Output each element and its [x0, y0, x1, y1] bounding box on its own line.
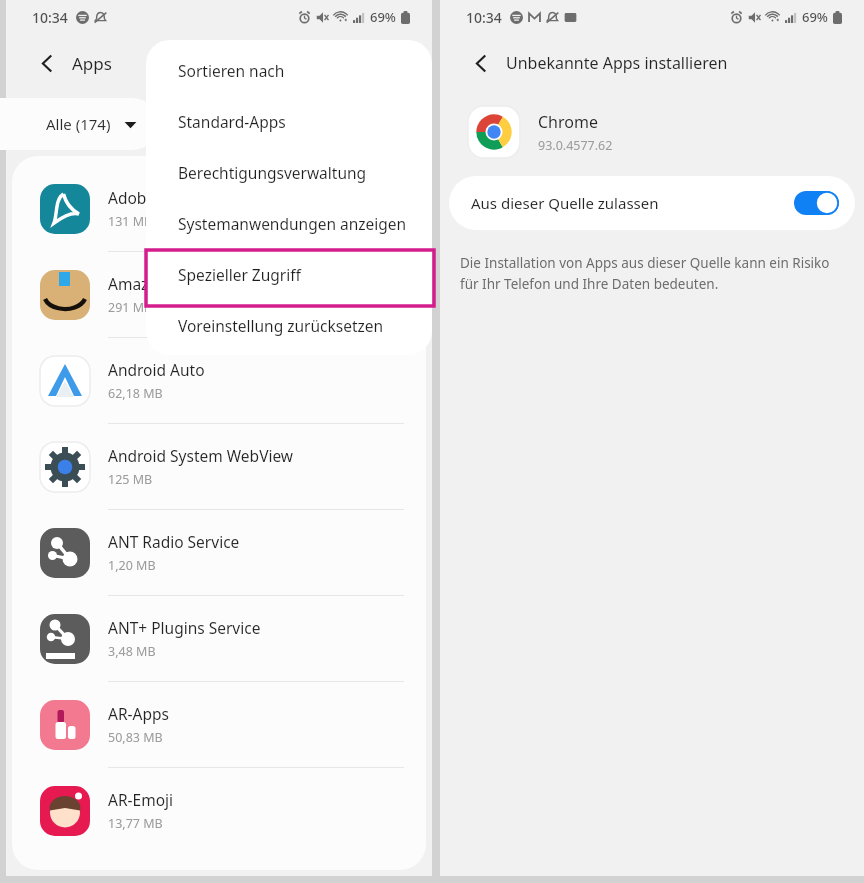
staticText: 291 MB — [108, 299, 153, 316]
button[interactable]: Spezieller Zugriff — [146, 249, 432, 300]
staticText: Android Auto — [108, 359, 205, 380]
staticText: 62,18 MB — [108, 385, 163, 402]
button[interactable]: Android System WebView — [12, 424, 426, 509]
staticText: Android System WebView — [108, 445, 294, 466]
staticText: 69% — [370, 8, 396, 26]
button[interactable]: Berechtigungsverwaltung — [146, 147, 432, 198]
staticText: Alle (174) — [46, 114, 111, 134]
staticText: Amazon Shopping — [108, 273, 242, 294]
staticText: 131 MB — [108, 213, 153, 230]
button[interactable]: Aus dieser Quelle zulassen — [449, 176, 855, 230]
button[interactable]: Systemanwendungen anzeigen — [146, 198, 432, 249]
button[interactable]: AR-Apps — [12, 682, 426, 767]
staticText: Aus dieser Quelle zulassen — [471, 193, 659, 213]
staticText: 10:34 — [32, 8, 68, 27]
other: Aus dieser Quelle zulassen — [794, 191, 839, 215]
button[interactable]: AR-Emoji — [12, 768, 426, 853]
staticText: Unbekannte Apps installieren — [506, 52, 728, 74]
staticText: Spezieller Zugriff — [178, 264, 301, 285]
button[interactable]: Back — [462, 44, 500, 82]
staticText: Adobe Acrobat — [108, 187, 216, 208]
staticText: 10:34 — [466, 8, 502, 27]
staticText: 13,77 MB — [108, 815, 163, 832]
staticText: AR-Apps — [108, 703, 169, 724]
staticText: Die Installation von Apps aus dieser Que… — [460, 254, 834, 293]
button[interactable]: Adobe Acrobat — [12, 166, 426, 251]
button[interactable]: ANT Radio Service — [12, 510, 426, 595]
button[interactable]: Standard-Apps — [146, 96, 432, 147]
staticText: Chrome — [538, 111, 598, 133]
button[interactable]: Back — [28, 44, 66, 82]
staticText: 50,83 MB — [108, 729, 163, 746]
staticText: 1,20 MB — [108, 557, 156, 574]
staticText: Berechtigungsverwaltung — [178, 162, 367, 183]
staticText: Standard-Apps — [178, 111, 286, 132]
staticText: Voreinstellung zurücksetzen — [178, 315, 384, 336]
button[interactable]: Alle (174) — [0, 98, 158, 150]
staticText: Sortieren nach — [178, 60, 285, 81]
button[interactable]: Amazon Shopping — [12, 252, 426, 337]
button[interactable]: Android Auto — [12, 338, 426, 423]
staticText: ANT Radio Service — [108, 531, 240, 552]
staticText: Systemanwendungen anzeigen — [178, 213, 407, 234]
staticText: 125 MB — [108, 471, 153, 488]
button[interactable]: Voreinstellung zurücksetzen — [146, 300, 432, 351]
button[interactable]: ANT+ Plugins Service — [12, 596, 426, 681]
staticText: ANT+ Plugins Service — [108, 617, 261, 638]
staticText: 3,48 MB — [108, 643, 156, 660]
staticText: 93.0.4577.62 — [538, 137, 613, 154]
staticText: AR-Emoji — [108, 789, 174, 810]
button[interactable]: Sortieren nach — [146, 45, 432, 96]
staticText: 69% — [802, 8, 828, 26]
staticText: Apps — [72, 52, 112, 75]
